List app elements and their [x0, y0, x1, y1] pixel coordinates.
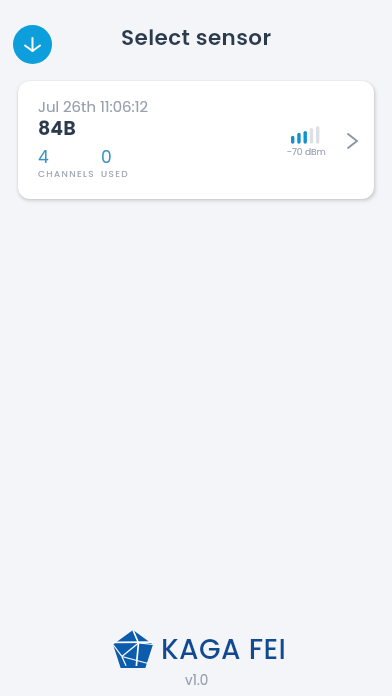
staticText: 0 — [101, 145, 112, 169]
button[interactable]: Download — [13, 25, 52, 64]
staticText: USED — [101, 168, 129, 181]
staticText: CHANNELS — [38, 168, 95, 181]
staticText: Jul 26th 11:06:12 — [38, 96, 149, 117]
staticText: KAGA FEI — [161, 630, 287, 669]
other: Open sensor — [348, 134, 357, 148]
staticText: 84B — [38, 115, 76, 142]
staticText: Select sensor — [121, 22, 272, 52]
staticText: -70 dBm — [287, 146, 326, 159]
staticText: v1.0 — [185, 671, 209, 690]
staticText: 4 — [38, 145, 49, 169]
button[interactable]: Jul 26th 11:06:12 — [18, 81, 374, 199]
